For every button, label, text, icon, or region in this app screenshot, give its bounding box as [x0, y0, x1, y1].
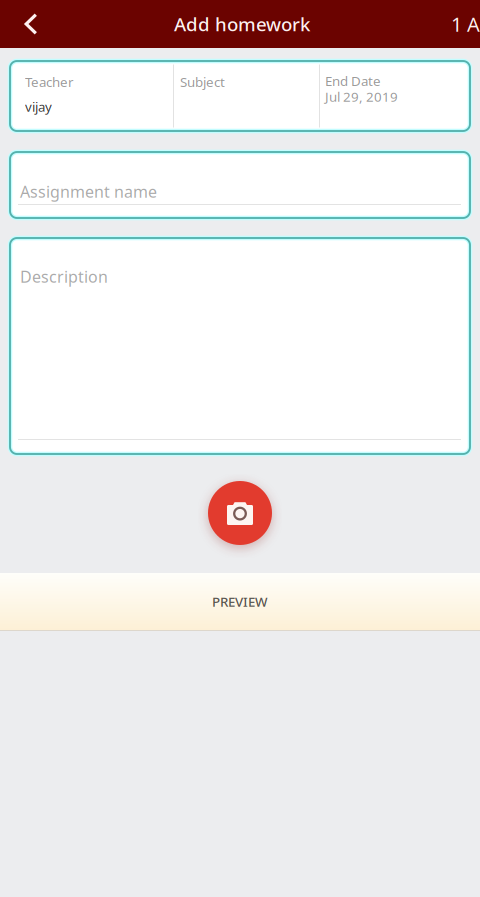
staticText: Description	[20, 266, 108, 287]
staticText: 1 A	[451, 11, 480, 37]
staticText: Subject	[180, 73, 225, 91]
staticText: Teacher	[25, 73, 74, 91]
staticText: Add homework	[174, 12, 310, 36]
staticText: End Date	[325, 72, 381, 90]
button[interactable]: Add photo	[208, 481, 272, 545]
button[interactable]: PREVIEW	[0, 573, 480, 631]
staticText: Assignment name	[20, 181, 157, 202]
staticText: PREVIEW	[212, 593, 268, 610]
staticText: Jul 29, 2019	[325, 88, 398, 105]
button[interactable]: Back	[7, 1, 55, 47]
staticText: vijay	[25, 98, 52, 115]
